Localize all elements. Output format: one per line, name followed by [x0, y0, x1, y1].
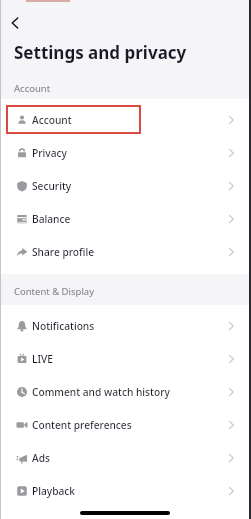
button[interactable]: Ads — [0, 441, 251, 474]
staticText: Content & Display — [14, 285, 95, 298]
staticText: Account — [14, 82, 51, 95]
staticText: Settings and privacy — [14, 41, 187, 64]
button[interactable]: Security — [0, 169, 251, 202]
staticText: Share profile — [32, 245, 95, 259]
staticText: Content preferences — [32, 418, 132, 432]
staticText: Privacy — [32, 146, 67, 160]
staticText: Notifications — [32, 319, 95, 333]
button[interactable]: Comment and watch history — [0, 375, 251, 408]
staticText: Account — [32, 113, 72, 127]
button[interactable]: Share profile — [0, 235, 251, 268]
button[interactable]: Notifications — [0, 309, 251, 342]
staticText: Comment and watch history — [32, 385, 170, 399]
staticText: Playback — [32, 484, 76, 498]
staticText: LIVE — [32, 352, 53, 366]
button[interactable]: Balance — [0, 202, 251, 235]
button[interactable]: Privacy — [0, 136, 251, 169]
button[interactable]: Content preferences — [0, 408, 251, 441]
button[interactable]: LIVE — [0, 342, 251, 375]
button[interactable]: Account — [0, 103, 251, 136]
staticText: Security — [32, 179, 72, 193]
staticText: Ads — [32, 451, 50, 465]
button[interactable]: Playback — [0, 474, 251, 507]
button[interactable]: Back — [3, 11, 27, 35]
staticText: Balance — [32, 212, 71, 226]
